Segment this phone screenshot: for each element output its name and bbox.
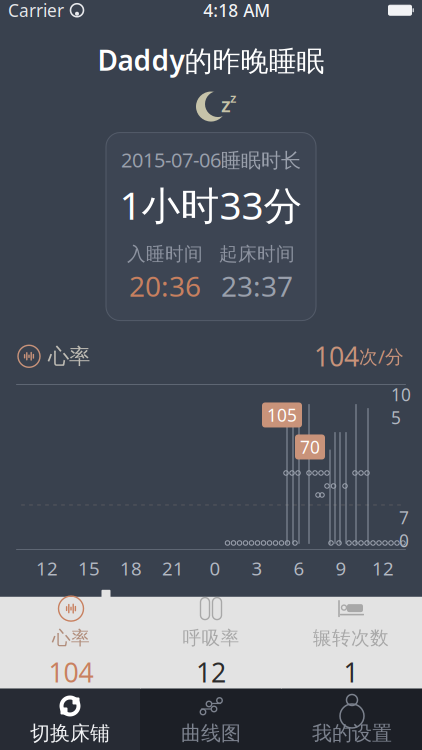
- staticText: 2015-07-06睡眠时长: [121, 147, 301, 173]
- staticText: 1: [343, 654, 358, 690]
- staticText: 起床时间: [219, 242, 295, 265]
- staticText: 105: [267, 403, 297, 426]
- staticText: 心率: [52, 627, 90, 649]
- staticText: 我的设置: [312, 721, 392, 746]
- staticText: 切换床铺: [30, 721, 110, 746]
- staticText: 70: [300, 435, 320, 458]
- staticText: 0: [209, 556, 220, 581]
- staticText: 15: [78, 556, 100, 581]
- staticText: 6: [293, 556, 304, 581]
- staticText: 1小时33分: [119, 179, 302, 230]
- staticText: 104: [314, 339, 359, 374]
- staticText: z: [221, 91, 231, 118]
- button[interactable]: 呼吸率: [141, 597, 281, 689]
- staticText: 70: [399, 506, 409, 552]
- staticText: 呼吸率: [182, 627, 239, 649]
- button[interactable]: 心率: [1, 597, 141, 689]
- button[interactable]: 切换床铺: [0, 689, 140, 750]
- button[interactable]: 我的设置: [282, 689, 422, 750]
- staticText: Carrier: [8, 0, 64, 22]
- staticText: 21: [162, 556, 184, 581]
- staticText: 12: [36, 556, 58, 581]
- staticText: 105: [391, 383, 411, 429]
- button[interactable]: 曲线图: [141, 689, 281, 750]
- staticText: 12: [372, 556, 394, 581]
- staticText: 23:37: [221, 267, 293, 305]
- staticText: 20:36: [129, 267, 201, 305]
- staticText: 18: [120, 556, 142, 581]
- staticText: 心率: [48, 343, 90, 369]
- staticText: 4:18 AM: [203, 0, 270, 22]
- button[interactable]: 辗转次数: [281, 597, 421, 689]
- staticText: 次/分: [359, 344, 404, 369]
- staticText: 曲线图: [181, 721, 241, 746]
- staticText: 12: [196, 654, 226, 690]
- staticText: 入睡时间: [127, 242, 203, 265]
- staticText: z: [230, 89, 236, 106]
- staticText: 104: [48, 654, 93, 690]
- staticText: 3: [251, 556, 262, 581]
- staticText: Daddy的昨晚睡眠: [97, 41, 324, 78]
- staticText: 9: [335, 556, 346, 581]
- staticText: 辗转次数: [313, 627, 389, 649]
